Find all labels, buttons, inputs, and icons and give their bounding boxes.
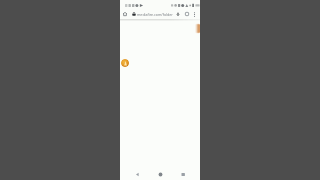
button[interactable]: Feedback	[195, 23, 200, 34]
button[interactable]: Switch tabs	[183, 10, 191, 18]
button[interactable]: Voice search	[174, 10, 182, 18]
staticText: mediafire.com/folder	[137, 12, 173, 17]
button[interactable]: More options	[190, 10, 198, 18]
button[interactable]: Home	[121, 10, 129, 18]
button[interactable]: Recent apps	[177, 168, 189, 180]
button[interactable]: MediaFire logo	[121, 59, 129, 67]
button[interactable]: Home	[154, 168, 166, 180]
button[interactable]: Back	[131, 168, 143, 180]
